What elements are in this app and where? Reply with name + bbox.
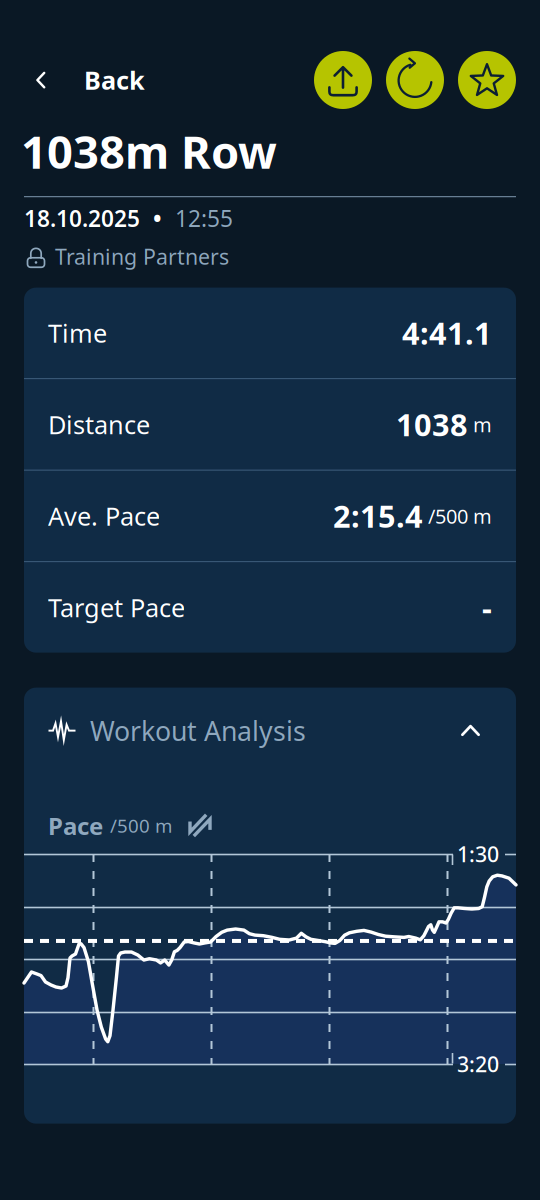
staticText: 18.10.2025 [24,203,140,233]
staticText: m [473,411,492,438]
staticText: Target Pace [48,591,185,624]
staticText: Distance [48,408,150,441]
staticText: Workout Analysis [90,713,306,748]
button[interactable]: Back [0,63,145,97]
button[interactable]: Share [314,51,372,109]
staticText: 4:41.1 [402,312,492,353]
staticText: 1038m Row [21,121,277,181]
staticText: • [153,203,162,233]
staticText: - [482,587,492,628]
staticText: Training Partners [55,242,229,271]
staticText: /500 m [110,813,172,838]
staticText: 3:20 [457,1050,499,1078]
staticText: 1038 [396,404,468,445]
staticText: Pace [48,810,103,841]
staticText: Back [84,63,145,97]
staticText: 12:55 [175,203,233,233]
staticText: 2:15.4 [333,495,423,536]
staticText: Ave. Pace [48,499,160,533]
staticText: /500 m [428,503,492,529]
staticText: Time [48,316,107,350]
staticText: 1:30 [457,840,499,868]
button[interactable]: Favourite [458,51,516,109]
button[interactable]: Repeat workout [386,51,444,109]
